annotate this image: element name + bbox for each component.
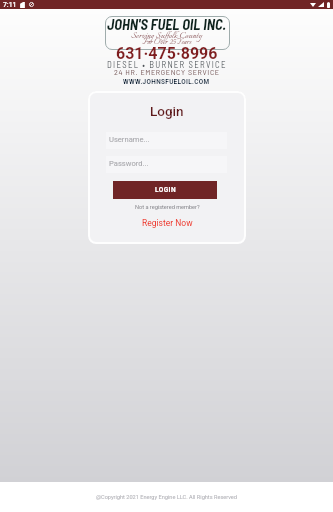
staticText: Username... bbox=[109, 135, 150, 144]
staticText: 631·475·8996 bbox=[116, 44, 218, 63]
staticText: Register Now bbox=[142, 218, 193, 228]
staticText: DIESEL • BURNER SERVICE bbox=[107, 59, 227, 70]
other: Wi-Fi bbox=[310, 2, 316, 7]
staticText: Password... bbox=[109, 159, 149, 168]
staticText: For Over 25 Years bbox=[142, 36, 192, 48]
other: SIM card bbox=[20, 2, 25, 8]
staticText: WWW.JOHNSFUELOIL.COM bbox=[123, 78, 210, 86]
other: Signal strength bbox=[318, 2, 324, 7]
staticText: Login bbox=[150, 103, 184, 119]
staticText: @Copyright 2021 Energy Engine LLC. All R… bbox=[96, 494, 237, 501]
other: Do not disturb bbox=[29, 2, 34, 7]
button[interactable]: LOGIN bbox=[113, 181, 217, 199]
button[interactable]: Username... bbox=[106, 132, 227, 149]
staticText: 24 HR. EMERGENCY SERVICE bbox=[114, 67, 220, 77]
staticText: Serving Suffolk County bbox=[131, 29, 203, 43]
staticText: JOHN'S FUEL OIL INC. bbox=[107, 15, 226, 32]
staticText: 7:11 bbox=[3, 1, 17, 9]
button[interactable]: Password... bbox=[106, 156, 227, 173]
staticText: LOGIN bbox=[155, 186, 176, 194]
staticText: Not a registered member? bbox=[135, 204, 200, 211]
other: Battery bbox=[327, 2, 330, 8]
button[interactable]: Register Now bbox=[138, 217, 197, 229]
